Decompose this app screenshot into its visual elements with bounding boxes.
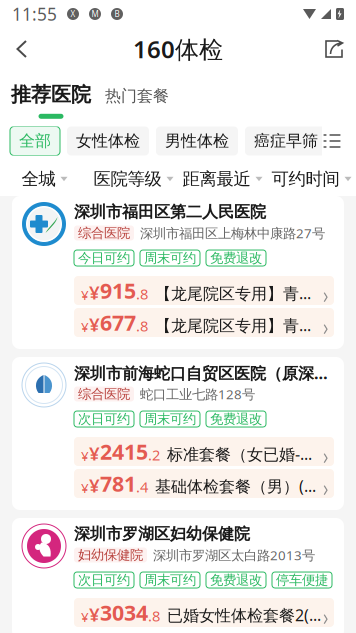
staticText: .8: [136, 316, 148, 336]
button[interactable]: 可约时间: [267, 162, 356, 196]
staticText: 677: [100, 308, 136, 337]
button[interactable]: 父母体检: [334, 126, 356, 155]
button[interactable]: 深圳市前海蛇口自贸区医院（原深…: [12, 357, 344, 510]
staticText: 免费退改: [210, 572, 262, 588]
staticText: 2415: [100, 437, 148, 466]
staticText: 蛇口工业七路128号: [140, 385, 255, 403]
staticText: ¥: [81, 447, 89, 465]
staticText: ¥: [81, 608, 89, 626]
staticText: 妇幼保健院: [78, 547, 143, 563]
staticText: 免费退改: [210, 411, 262, 427]
staticText: ¥: [81, 479, 89, 497]
staticText: 深圳市福田区第二人民医院: [74, 202, 266, 222]
staticText: .8: [148, 606, 160, 626]
staticText: 癌症早筛: [254, 131, 318, 151]
button[interactable]: ¥: [74, 276, 334, 305]
staticText: 推荐医院: [11, 82, 91, 107]
staticText: 深圳市前海蛇口自贸区医院（原深…: [74, 362, 328, 384]
staticText: 男性体检: [165, 131, 229, 151]
staticText: 可约时间: [271, 168, 339, 190]
staticText: 热门套餐: [105, 86, 169, 106]
button[interactable]: 全部: [10, 126, 60, 155]
staticText: 3034: [100, 598, 148, 627]
staticText: ¥: [81, 286, 89, 304]
staticText: 已婚女性体检套餐2(大…: [167, 604, 322, 626]
staticText: ¥: [89, 280, 100, 305]
staticText: .8: [136, 284, 148, 304]
staticText: 综合医院: [78, 225, 130, 241]
staticText: 全城: [21, 168, 55, 190]
button[interactable]: 深圳市福田区第二人民医院: [12, 196, 344, 349]
button[interactable]: 癌症早筛: [245, 126, 327, 155]
staticText: 周末可约: [144, 572, 196, 588]
staticText: 综合医院: [78, 386, 130, 402]
button[interactable]: 距离最近: [178, 162, 267, 196]
staticText: ¥: [81, 318, 89, 336]
button[interactable]: 深圳市罗湖区妇幼保健院: [12, 518, 344, 633]
button[interactable]: ¥: [74, 598, 334, 627]
staticText: 160体检: [133, 33, 223, 65]
staticText: 距离最近: [182, 168, 250, 190]
button[interactable]: More filters: [322, 126, 342, 155]
staticText: B: [114, 9, 119, 19]
staticText: ¥: [89, 473, 100, 498]
staticText: 深圳市罗湖区太白路2013号: [153, 546, 315, 564]
button[interactable]: Share: [312, 31, 356, 67]
button[interactable]: 热门套餐: [105, 86, 169, 119]
button[interactable]: 医院等级: [89, 162, 178, 196]
button[interactable]: 女性体检: [67, 126, 149, 155]
staticText: 【龙尾院区专用】青年初…: [155, 314, 322, 336]
staticText: 今日可约: [78, 250, 130, 266]
staticText: 停车便捷: [276, 572, 328, 588]
staticText: .2: [148, 445, 160, 465]
staticText: 11:55: [12, 2, 57, 25]
staticText: 次日可约: [78, 411, 130, 427]
button[interactable]: Back: [0, 31, 44, 67]
staticText: ¥: [89, 312, 100, 337]
staticText: 【龙尾院区专用】青年初…: [155, 282, 322, 304]
staticText: 781: [100, 469, 136, 498]
button[interactable]: 推荐医院: [11, 82, 91, 119]
staticText: .4: [136, 477, 148, 497]
staticText: 深圳市福田区上梅林中康路27号: [140, 224, 325, 242]
staticText: 医院等级: [93, 168, 161, 190]
staticText: ¥: [89, 602, 100, 627]
button[interactable]: ¥: [74, 308, 334, 337]
staticText: M: [91, 9, 98, 19]
staticText: 标准套餐（女已婚-阴道…: [167, 443, 322, 465]
staticText: 全部: [19, 131, 51, 151]
staticText: 基础体检套餐（男）(肝…: [155, 475, 322, 497]
button[interactable]: 男性体检: [156, 126, 238, 155]
button[interactable]: ¥: [74, 469, 334, 498]
staticText: 次日可约: [78, 572, 130, 588]
button[interactable]: ¥: [74, 437, 334, 466]
staticText: 915: [100, 276, 136, 305]
staticText: 周末可约: [144, 411, 196, 427]
staticText: ¥: [89, 441, 100, 466]
staticText: 免费退改: [210, 250, 262, 266]
button[interactable]: 全城: [0, 162, 89, 196]
staticText: 深圳市罗湖区妇幼保健院: [74, 524, 250, 544]
staticText: 女性体检: [76, 131, 140, 151]
staticText: X: [70, 9, 75, 19]
staticText: 周末可约: [144, 250, 196, 266]
